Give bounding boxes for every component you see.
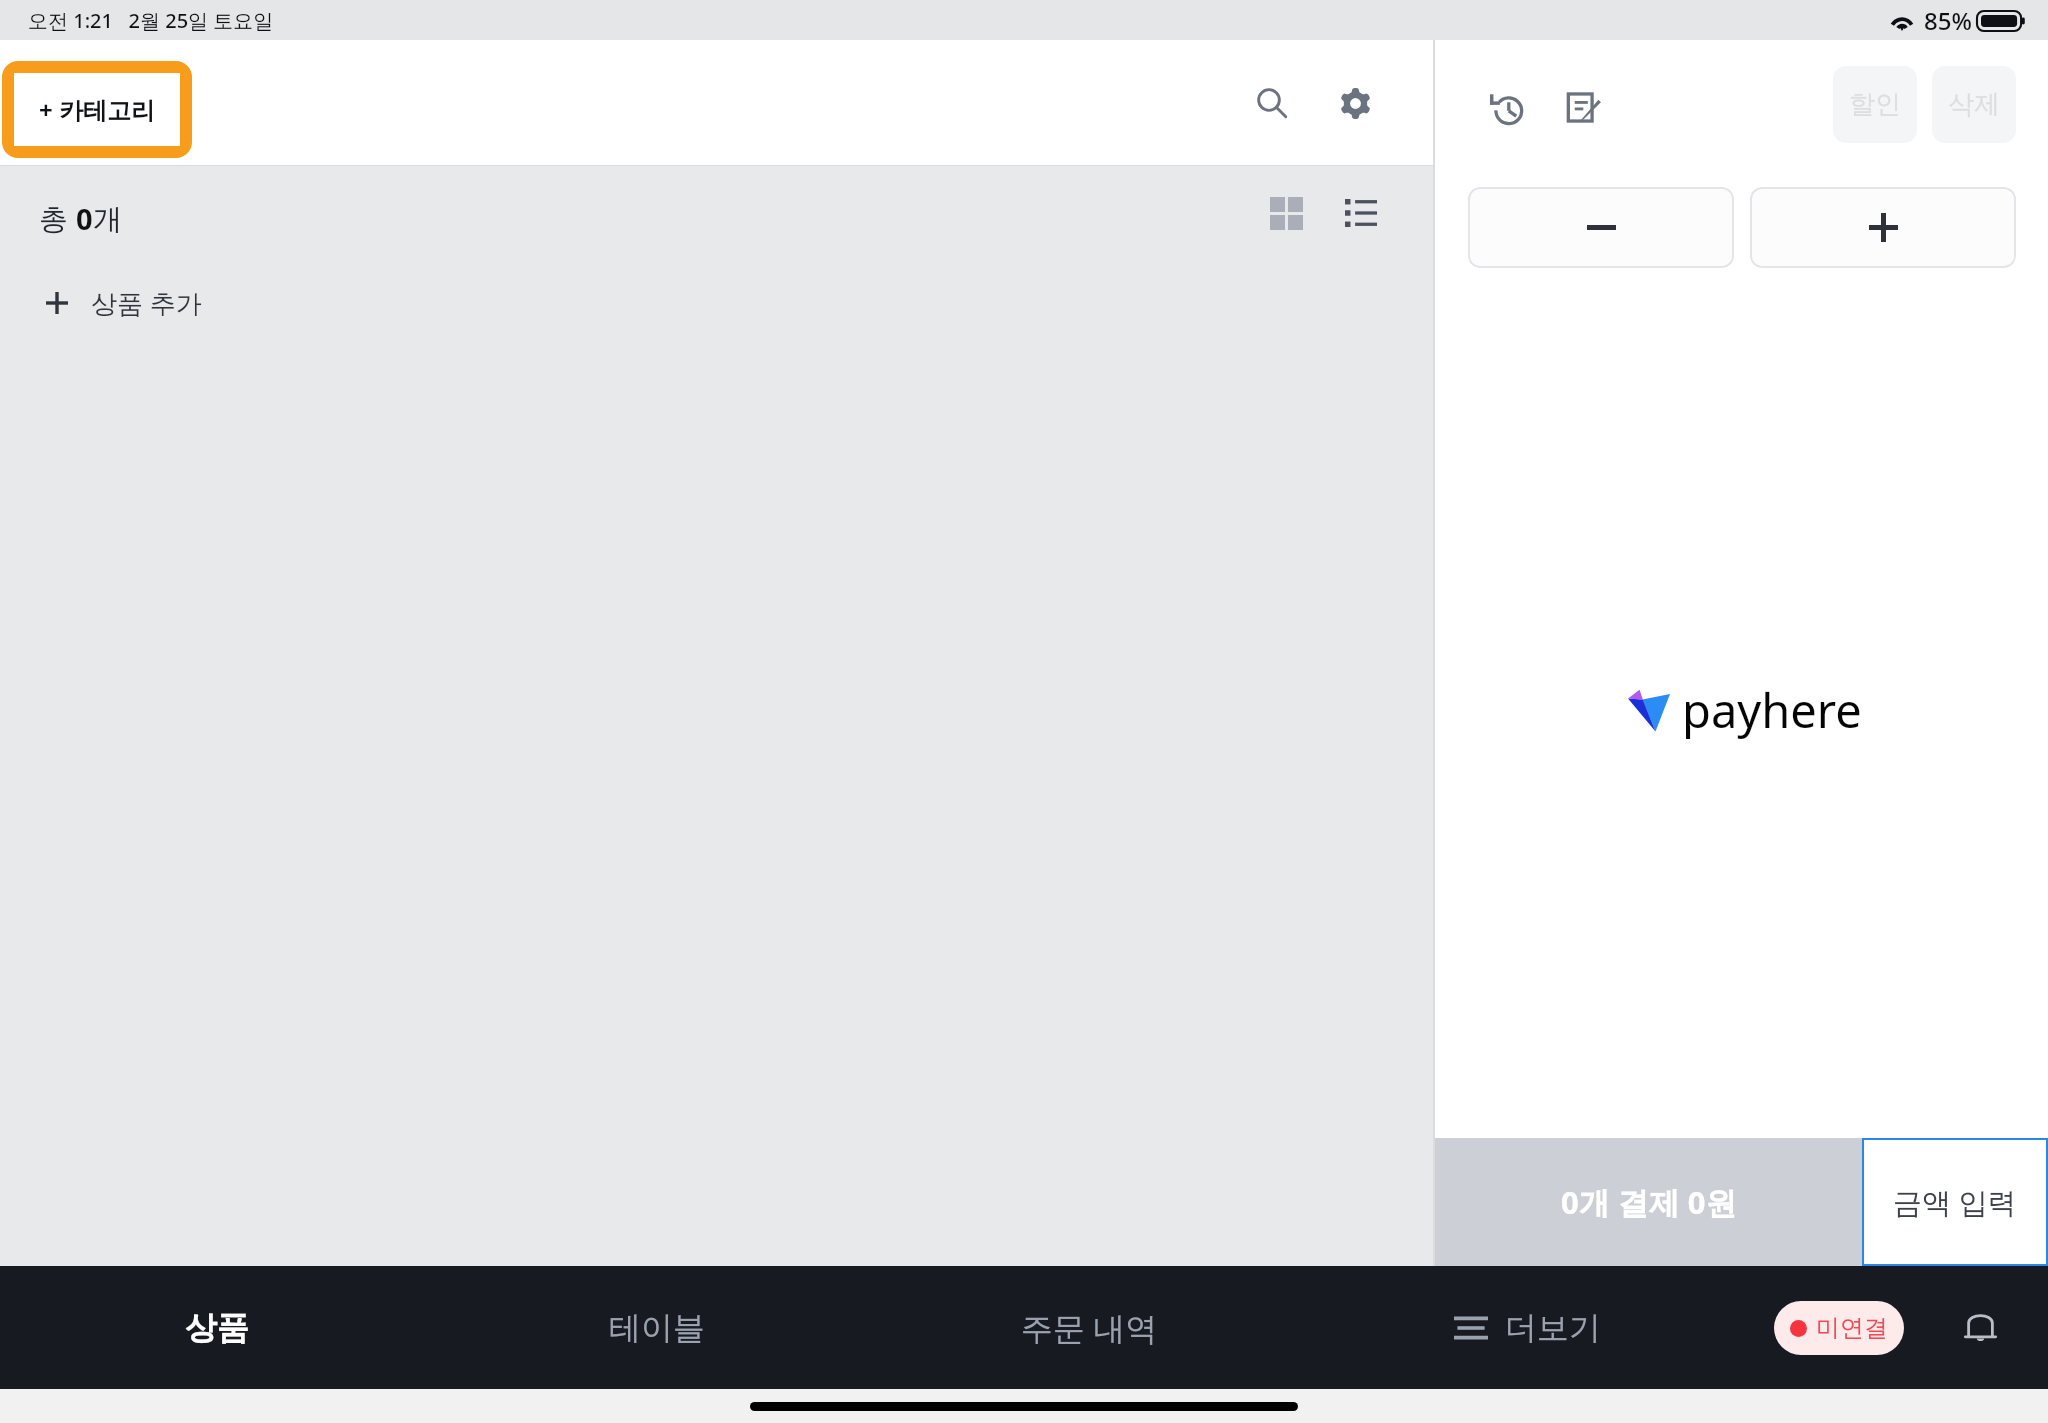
button[interactable]: 할인 xyxy=(1833,66,1917,143)
button[interactable]: Search xyxy=(1236,67,1308,139)
staticText: 미연결 xyxy=(1816,1313,1888,1343)
button[interactable]: Decrease quantity xyxy=(1468,187,1734,268)
staticText: 주문 내역 xyxy=(1021,1306,1158,1350)
staticText: 개 xyxy=(93,201,122,238)
button[interactable]: Edit order xyxy=(1549,73,1617,141)
button[interactable]: 미연결 xyxy=(1774,1301,1904,1355)
button[interactable]: 삭제 xyxy=(1932,66,2016,143)
staticText: 삭제 xyxy=(1948,88,2000,121)
staticText: 상품 추가 xyxy=(91,285,202,321)
button[interactable]: 금액 입력 xyxy=(1862,1138,2048,1266)
button[interactable]: 0개 결제 0원 xyxy=(1435,1138,1862,1266)
staticText: + 카테고리 xyxy=(39,93,155,126)
staticText: 테이블 xyxy=(609,1308,705,1348)
button[interactable]: + 카테고리 xyxy=(2,61,192,158)
button[interactable]: Settings xyxy=(1319,67,1391,139)
button[interactable]: Order history xyxy=(1471,73,1539,141)
button[interactable]: 더보기 xyxy=(1433,1266,1621,1389)
button[interactable]: List view xyxy=(1331,183,1391,243)
staticText: 오전 1:21 2월 25일 토요일 xyxy=(28,7,274,34)
button[interactable]: Notifications xyxy=(1946,1294,2014,1362)
staticText: 85% xyxy=(1924,4,1972,37)
staticText: 0 xyxy=(76,199,93,238)
staticText: payhere xyxy=(1682,678,1862,742)
button[interactable]: Grid view xyxy=(1256,183,1316,243)
button[interactable]: 상품 xyxy=(0,1266,434,1389)
button[interactable]: 상품 추가 xyxy=(46,284,202,322)
staticText: 더보기 xyxy=(1505,1308,1601,1348)
staticText: 상품 xyxy=(185,1308,249,1348)
button[interactable]: Increase quantity xyxy=(1750,187,2016,268)
button[interactable]: 테이블 xyxy=(441,1266,873,1389)
staticText: 0개 결제 0원 xyxy=(1561,1181,1737,1223)
staticText: 총 xyxy=(39,198,76,238)
button[interactable]: 주문 내역 xyxy=(873,1266,1305,1389)
staticText: 금액 입력 xyxy=(1893,1182,2017,1222)
staticText: 할인 xyxy=(1849,88,1901,121)
